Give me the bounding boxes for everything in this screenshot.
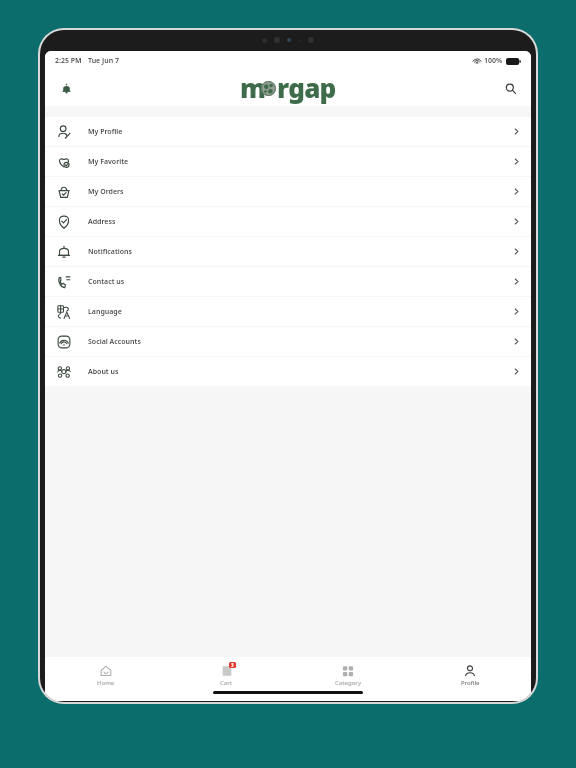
button[interactable]: About us: [45, 357, 531, 386]
staticText: 3: [231, 662, 234, 668]
staticText: My Profile: [88, 127, 123, 137]
button[interactable]: Profile: [409, 661, 531, 691]
staticText: 100%: [484, 56, 503, 66]
staticText: Social Accounts: [88, 337, 141, 347]
button[interactable]: My Favorite: [45, 147, 531, 176]
staticText: Tue Jun 7: [88, 56, 119, 66]
staticText: About us: [88, 367, 119, 377]
staticText: Category: [335, 679, 362, 687]
staticText: m rgap: [240, 70, 336, 105]
button[interactable]: Social Accounts: [45, 327, 531, 356]
staticText: Notifications: [88, 247, 132, 257]
staticText: My Favorite: [88, 157, 129, 167]
button[interactable]: My Profile: [45, 117, 531, 146]
button[interactable]: Notifications: [53, 75, 79, 101]
button[interactable]: Search: [497, 75, 523, 101]
button[interactable]: Contact us: [45, 267, 531, 296]
button[interactable]: Language: [45, 297, 531, 326]
button[interactable]: My Orders: [45, 177, 531, 206]
staticText: Address: [88, 217, 116, 227]
staticText: Cart: [220, 679, 233, 687]
button[interactable]: Address: [45, 207, 531, 236]
staticText: Home: [97, 679, 115, 687]
staticText: Profile: [461, 679, 480, 687]
button[interactable]: Category: [287, 661, 409, 691]
staticText: 2:25 PM: [55, 56, 82, 66]
staticText: My Orders: [88, 187, 124, 197]
staticText: Language: [88, 307, 122, 317]
button[interactable]: Home: [45, 661, 166, 691]
staticText: Contact us: [88, 277, 125, 287]
button[interactable]: 3: [166, 661, 287, 691]
button[interactable]: Notifications: [45, 237, 531, 266]
